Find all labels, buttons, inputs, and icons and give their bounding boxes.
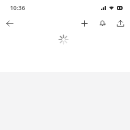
staticText: 10:36 [10, 4, 26, 12]
button[interactable]: Back [2, 16, 16, 30]
button[interactable]: Add [77, 16, 91, 30]
button[interactable]: Notifications [95, 16, 109, 30]
button[interactable]: Share [113, 16, 127, 30]
